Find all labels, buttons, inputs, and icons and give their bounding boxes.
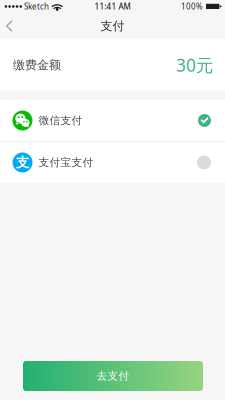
staticText: 微信支付 [38,114,82,127]
button[interactable]: Back [0,13,25,39]
button[interactable]: 去支付 [23,361,203,391]
staticText: 30元 [176,53,213,76]
staticText: 支付 [100,19,124,33]
staticText: 支 [16,154,29,171]
button[interactable]: 支 [0,142,225,183]
staticText: 11:41 AM [94,1,130,12]
staticText: 缴费金额 [13,58,61,72]
staticText: 支付宝支付 [38,156,93,169]
staticText: Sketch [24,1,49,12]
staticText: 去支付 [96,369,129,382]
button[interactable]: 微信支付 [0,100,225,141]
staticText: 100% [181,1,203,12]
